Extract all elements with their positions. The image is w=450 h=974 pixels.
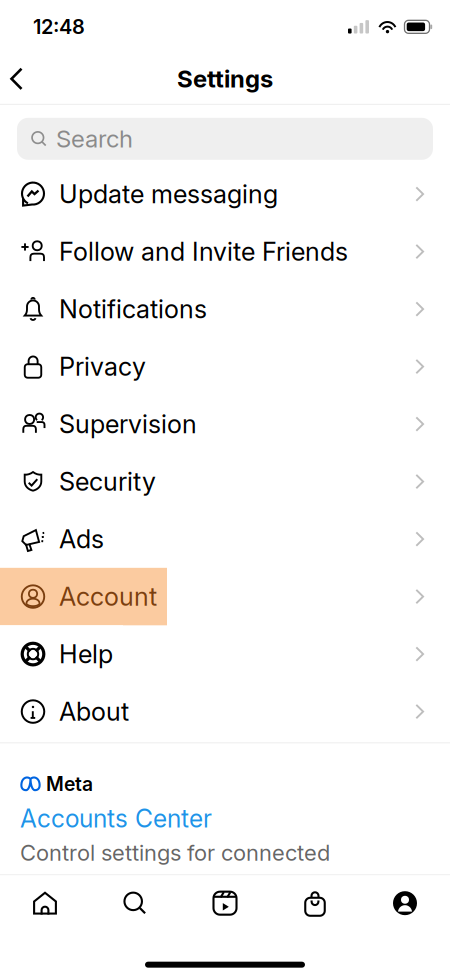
button[interactable]: Privacy: [0, 338, 450, 395]
staticText: Account: [59, 581, 157, 612]
staticText: Help: [59, 639, 113, 669]
button[interactable]: Security: [0, 453, 450, 510]
staticText: Privacy: [59, 351, 146, 382]
button[interactable]: About: [0, 683, 450, 740]
staticText: Settings: [177, 64, 273, 93]
button[interactable]: Reels: [180, 889, 270, 917]
button[interactable]: Supervision: [0, 395, 450, 453]
staticText: Notifications: [59, 294, 207, 324]
staticText: About: [59, 696, 129, 727]
staticText: Follow and Invite Friends: [59, 236, 348, 267]
staticText: 12:48: [33, 15, 85, 39]
staticText: Update messaging: [59, 179, 278, 209]
button[interactable]: Accounts Center: [20, 796, 212, 833]
button[interactable]: Search: [0, 105, 450, 165]
button[interactable]: Ads: [0, 510, 450, 568]
staticText: Search: [56, 124, 133, 153]
button[interactable]: Home: [0, 889, 90, 917]
button[interactable]: Notifications: [0, 280, 450, 338]
button[interactable]: Shop: [270, 889, 360, 917]
button[interactable]: Follow and Invite Friends: [0, 223, 450, 280]
button[interactable]: Update messaging: [0, 165, 450, 223]
button[interactable]: Back: [0, 59, 39, 98]
button[interactable]: Profile: [360, 889, 450, 917]
button[interactable]: Account: [0, 568, 450, 625]
staticText: Security: [59, 466, 156, 497]
button[interactable]: Help: [0, 625, 450, 683]
staticText: Supervision: [59, 409, 197, 439]
staticText: Ads: [59, 524, 104, 554]
staticText: Meta: [46, 772, 93, 796]
staticText: Accounts Center: [20, 804, 212, 833]
staticText: Control settings for connected: [20, 840, 330, 866]
button[interactable]: Search: [90, 889, 180, 917]
